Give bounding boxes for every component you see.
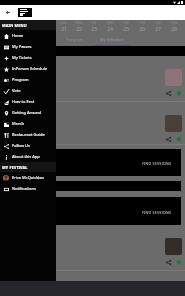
button[interactable]: Restaurant Guide xyxy=(0,129,56,140)
staticText: My Tickets xyxy=(12,55,32,60)
staticText: SAT xyxy=(156,21,161,25)
staticText: 24 xyxy=(107,26,113,33)
button[interactable]: TUE xyxy=(86,20,102,34)
button[interactable]: Share xyxy=(166,260,171,265)
staticText: My Schedule xyxy=(100,37,124,42)
staticText: MAIN MENU xyxy=(2,23,27,28)
staticText: Merch xyxy=(12,121,24,126)
staticText: TUE xyxy=(91,21,97,25)
button[interactable]: WED xyxy=(102,20,118,34)
staticText: SUN xyxy=(60,21,67,25)
button[interactable]: Favorite xyxy=(176,136,182,142)
staticText: InPerson Schedule xyxy=(12,66,48,71)
button[interactable]: SAT xyxy=(150,20,166,34)
staticText: 22 xyxy=(76,26,82,33)
button[interactable]: Favorite xyxy=(176,90,182,96)
button[interactable]: Program xyxy=(56,34,93,45)
button[interactable]: InPerson Schedule xyxy=(0,63,56,74)
button[interactable]: Getting Around xyxy=(0,107,56,118)
button[interactable]: Merch xyxy=(0,118,56,129)
button[interactable]: Festival logo xyxy=(18,8,32,17)
button[interactable]: My Schedule xyxy=(93,34,130,45)
staticText: 21 xyxy=(61,26,67,33)
staticText: Program xyxy=(12,77,29,82)
staticText: Restaurant Guide xyxy=(12,132,45,137)
staticText: Notifications xyxy=(12,186,36,191)
staticText: My Passes xyxy=(12,44,32,49)
staticText: About this App xyxy=(12,154,40,159)
button[interactable]: FIND SESSIONS xyxy=(56,197,181,225)
button[interactable]: Home xyxy=(0,30,56,41)
staticText: MY FESTIVAL xyxy=(2,165,28,170)
staticText: 26 xyxy=(139,26,145,33)
button[interactable]: How to Fest xyxy=(0,96,56,107)
staticText: Home xyxy=(12,33,24,38)
button[interactable]: Vote xyxy=(0,85,56,96)
button[interactable]: About this App xyxy=(0,151,56,162)
button[interactable]: THU xyxy=(118,20,134,34)
staticText: Program xyxy=(66,37,83,42)
staticText: Vote xyxy=(12,88,21,93)
button[interactable]: Share xyxy=(56,225,185,271)
staticText: MON xyxy=(75,21,83,25)
button[interactable]: MON xyxy=(71,20,86,34)
staticText: How to Fest xyxy=(12,99,35,104)
button[interactable]: SUN xyxy=(56,20,71,34)
staticText: FRI xyxy=(140,21,145,25)
staticText: Erica McQuiddan xyxy=(12,175,44,180)
button[interactable]: SUN xyxy=(166,20,182,34)
staticText: Follow Us xyxy=(12,143,30,148)
button[interactable]: My Passes xyxy=(0,41,56,52)
staticText: FIND SESSIONS xyxy=(142,161,172,166)
staticText: 23 xyxy=(91,26,97,33)
staticText: WED xyxy=(107,21,114,25)
staticText: Getting Around xyxy=(12,110,42,115)
button[interactable]: Share xyxy=(56,102,185,145)
button[interactable]: Share xyxy=(166,91,171,96)
button[interactable]: Share xyxy=(56,56,185,102)
button[interactable]: Favorite xyxy=(176,259,182,265)
button[interactable]: Share xyxy=(166,137,171,142)
staticText: SUN xyxy=(171,21,178,25)
button[interactable]: Back xyxy=(1,6,14,19)
staticText: 27 xyxy=(155,26,161,33)
staticText: FIND SESSIONS xyxy=(142,210,172,215)
button[interactable]: FRI xyxy=(134,20,150,34)
button[interactable]: FIND SESSIONS xyxy=(56,149,181,176)
staticText: THU xyxy=(123,21,129,25)
button[interactable]: Follow Us xyxy=(0,140,56,151)
button[interactable]: Erica McQuiddan xyxy=(0,172,56,183)
button[interactable]: My Tickets xyxy=(0,52,56,63)
button[interactable]: Program xyxy=(0,74,56,85)
staticText: 25 xyxy=(123,26,129,33)
staticText: 28 xyxy=(171,26,177,33)
button[interactable]: Notifications xyxy=(0,183,56,194)
